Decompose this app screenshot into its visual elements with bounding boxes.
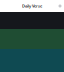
staticText: Daily Verse — [22, 3, 42, 9]
button[interactable]: Share — [56, 1, 64, 11]
